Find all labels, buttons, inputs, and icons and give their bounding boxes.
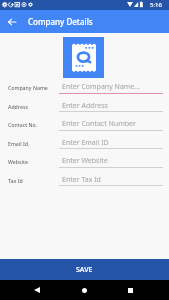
staticText: Company Details [28,16,93,27]
staticText: Enter Contact Number [62,119,136,129]
staticText: Enter Email ID [62,138,109,148]
staticText: Email Id. [8,140,30,147]
staticText: Company Name [8,84,48,91]
button[interactable]: Back [0,10,23,33]
button[interactable] [59,117,163,131]
staticText: Enter Address [62,101,108,111]
staticText: SAVE [76,265,93,275]
staticText: Tax Id [8,177,23,184]
button[interactable]: Home [74,280,94,300]
staticText: Enter Company Name... [62,82,140,92]
staticText: Address [8,103,28,110]
staticText: Contact No. [8,121,38,128]
button[interactable]: Back [27,280,47,300]
button[interactable] [59,98,163,112]
button[interactable] [59,135,163,149]
button[interactable] [59,172,163,186]
staticText: Enter Tax Id [62,175,101,185]
staticText: Website [8,158,28,165]
staticText: 5:16 [150,1,162,9]
button[interactable] [59,154,163,168]
button[interactable]: Recent apps [120,280,140,300]
staticText: Enter Website [62,156,108,166]
button[interactable]: SAVE [0,259,169,280]
button[interactable] [59,80,163,94]
